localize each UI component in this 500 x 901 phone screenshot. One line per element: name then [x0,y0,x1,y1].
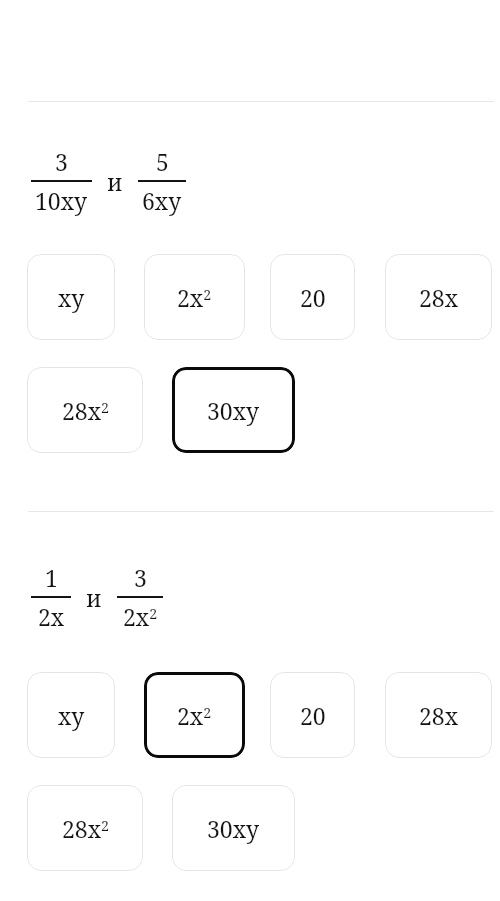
staticText: 30xy [207,813,260,844]
staticText: 2x [38,601,65,632]
staticText: 20 [300,700,326,731]
button[interactable]: 28x2 [27,367,143,453]
staticText: 28x [419,282,459,313]
staticText: 3 [134,562,147,593]
staticText: 30xy [207,395,260,426]
button[interactable]: 20 [270,672,355,758]
staticText: и [86,582,102,613]
staticText: 2x2 [177,282,212,313]
button[interactable]: 20 [270,254,355,340]
button[interactable]: xy [27,672,115,758]
button[interactable]: 2x2 [144,672,245,758]
button[interactable]: 2x2 [144,254,245,340]
staticText: 2x2 [123,601,158,632]
staticText: xy [58,700,85,731]
button[interactable]: 28x [385,672,492,758]
staticText: 5 [156,146,169,177]
button[interactable]: 28x2 [27,785,143,871]
staticText: xy [58,282,85,313]
staticText: и [107,166,123,197]
button[interactable]: xy [27,254,115,340]
staticText: 3 [55,146,68,177]
staticText: 28x [419,700,459,731]
staticText: 28x2 [62,395,109,426]
button[interactable]: 30xy [172,785,295,871]
staticText: 2x2 [177,700,212,731]
staticText: 10xy [35,185,88,216]
staticText: 6xy [142,185,182,216]
staticText: 1 [45,562,58,593]
staticText: 20 [300,282,326,313]
staticText: 28x2 [62,813,109,844]
button[interactable]: 28x [385,254,492,340]
button[interactable]: 30xy [172,367,295,453]
